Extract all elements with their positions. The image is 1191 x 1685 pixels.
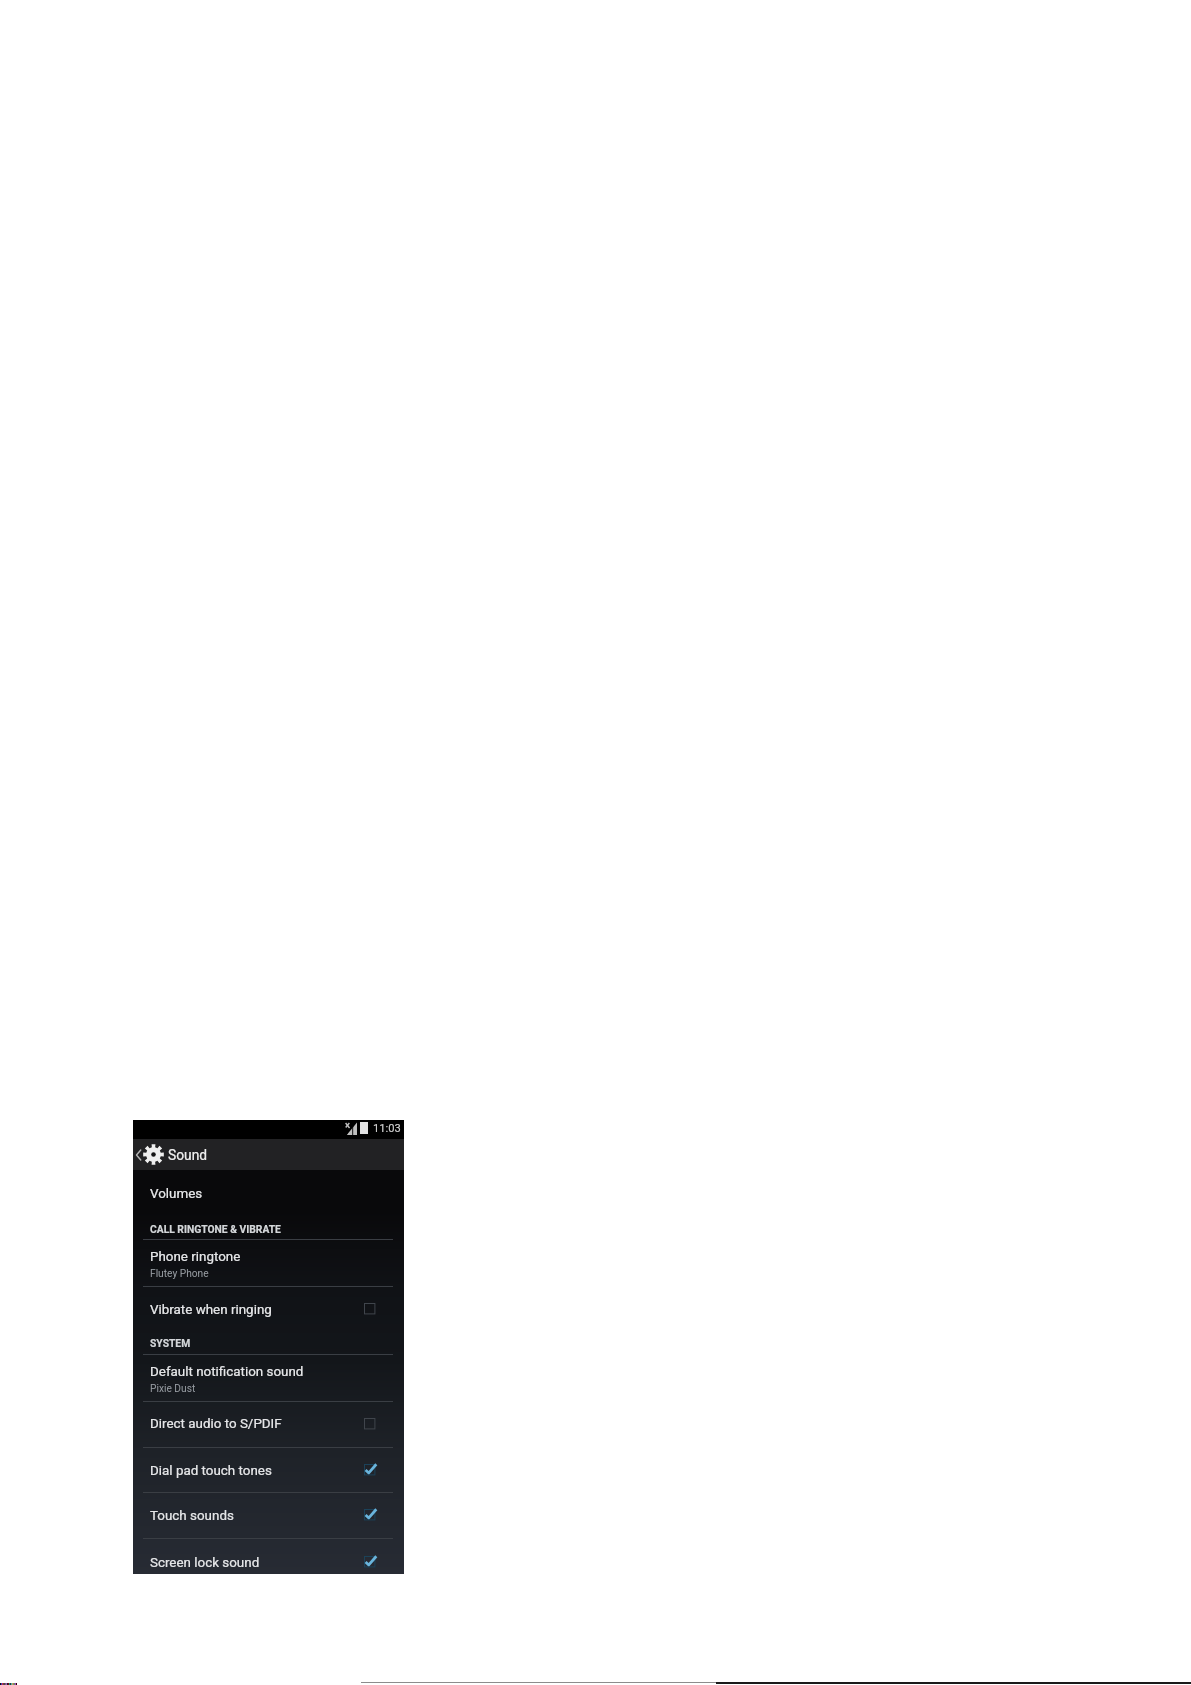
staticText: 11:03	[373, 1122, 401, 1135]
staticText: Touch sounds	[150, 1508, 234, 1524]
other: Settings	[143, 1144, 164, 1165]
staticText: Volumes	[150, 1186, 203, 1202]
staticText: Pixie Dust	[150, 1383, 196, 1395]
staticText: Dial pad touch tones	[150, 1463, 272, 1479]
other: Navigate up	[136, 1150, 141, 1160]
button[interactable]: Screen lock sound	[133, 1538, 404, 1575]
button[interactable]: Dial pad touch tones	[133, 1447, 404, 1493]
button[interactable]: Default notification sound	[133, 1354, 404, 1401]
staticText: Sound	[168, 1147, 208, 1163]
staticText: SYSTEM	[150, 1337, 191, 1349]
button[interactable]: Direct audio to S/PDIF	[133, 1401, 404, 1447]
staticText: Screen lock sound	[150, 1555, 260, 1571]
button[interactable]: Touch sounds	[133, 1492, 404, 1538]
staticText: Default notification sound	[150, 1364, 304, 1380]
staticText: Vibrate when ringing	[150, 1302, 272, 1318]
staticText: Phone ringtone	[150, 1249, 241, 1265]
button[interactable]: Phone ringtone	[133, 1239, 404, 1286]
staticText: CALL RINGTONE & VIBRATE	[150, 1223, 281, 1235]
staticText: Direct audio to S/PDIF	[150, 1416, 282, 1432]
button[interactable]: Navigate up	[133, 1139, 404, 1170]
button[interactable]: Volumes	[133, 1170, 404, 1216]
staticText: Flutey Phone	[150, 1268, 209, 1280]
button[interactable]: Vibrate when ringing	[133, 1286, 404, 1331]
